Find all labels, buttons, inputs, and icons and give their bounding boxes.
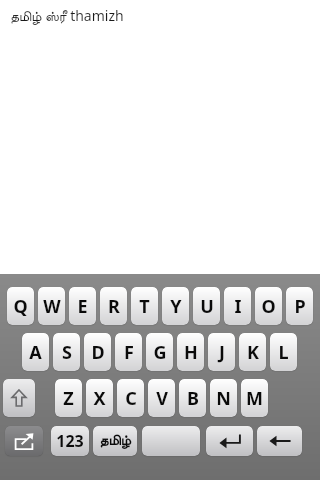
staticText: K [247, 340, 259, 365]
button[interactable]: Y [162, 287, 189, 325]
button[interactable]: S [53, 333, 80, 371]
staticText: தமிழ் ஸ்ரீ thamizh [10, 6, 124, 25]
button[interactable]: X [86, 379, 113, 417]
button[interactable]: F [115, 333, 142, 371]
staticText: A [29, 340, 42, 365]
button[interactable]: தமிழ் [93, 426, 137, 456]
button[interactable]: G [146, 333, 173, 371]
staticText: T [139, 294, 150, 319]
button[interactable]: A [22, 333, 49, 371]
staticText: U [200, 294, 214, 319]
staticText: P [294, 294, 306, 319]
button[interactable]: J [208, 333, 235, 371]
button[interactable]: Return [206, 426, 253, 456]
button[interactable]: Shift [3, 379, 35, 417]
button[interactable]: D [84, 333, 111, 371]
button[interactable]: K [239, 333, 266, 371]
staticText: O [261, 294, 276, 319]
staticText: J [219, 340, 225, 365]
button[interactable]: H [177, 333, 204, 371]
button[interactable]: O [255, 287, 282, 325]
button[interactable]: T [131, 287, 158, 325]
staticText: F [124, 340, 134, 365]
button[interactable]: Z [55, 379, 82, 417]
staticText: R [108, 294, 120, 319]
button[interactable]: B [179, 379, 206, 417]
staticText: M [246, 386, 263, 411]
button[interactable]: P [286, 287, 313, 325]
button[interactable]: M [241, 379, 268, 417]
button[interactable]: Space [142, 426, 200, 456]
button[interactable]: W [38, 287, 65, 325]
staticText: G [153, 340, 167, 365]
button[interactable]: N [210, 379, 237, 417]
button[interactable]: L [270, 333, 297, 371]
button[interactable]: U [193, 287, 220, 325]
staticText: C [125, 386, 137, 411]
staticText: Z [63, 386, 74, 411]
button[interactable]: R [100, 287, 127, 325]
button[interactable]: I [224, 287, 251, 325]
staticText: V [156, 386, 168, 411]
button[interactable]: Q [7, 287, 34, 325]
staticText: 123 [56, 430, 84, 452]
staticText: D [91, 340, 105, 365]
button[interactable]: C [117, 379, 144, 417]
staticText: N [216, 386, 231, 411]
button[interactable]: Share [5, 426, 43, 456]
staticText: I [234, 294, 242, 319]
staticText: B [187, 386, 199, 411]
staticText: H [184, 340, 198, 365]
staticText: L [278, 340, 289, 365]
button[interactable]: Backspace [257, 426, 302, 456]
staticText: S [62, 340, 72, 365]
button[interactable]: 123 [51, 426, 89, 456]
button[interactable]: E [69, 287, 96, 325]
staticText: E [77, 294, 88, 319]
staticText: X [93, 386, 106, 411]
button[interactable]: V [148, 379, 175, 417]
staticText: தமிழ் [99, 434, 131, 448]
staticText: Q [13, 294, 28, 319]
staticText: Y [170, 294, 182, 319]
staticText: W [43, 294, 61, 319]
